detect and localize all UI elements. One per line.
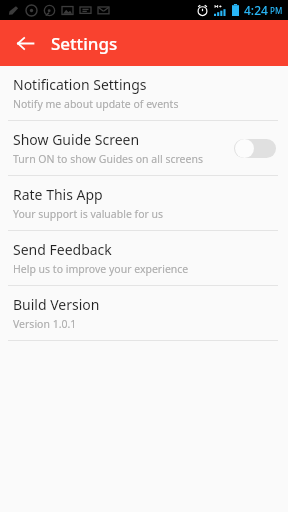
- button[interactable]: Rate This App: [0, 176, 288, 230]
- button[interactable]: Send Feedback: [0, 231, 288, 285]
- staticText: Settings: [51, 32, 118, 55]
- button[interactable]: Build Version: [0, 286, 288, 340]
- staticText: Notification Settings: [13, 75, 147, 94]
- staticText: Version 1.0.1: [13, 317, 77, 331]
- staticText: Show Guide Screen: [13, 130, 140, 149]
- staticText: Build Version: [13, 295, 100, 314]
- button[interactable]: Notification Settings: [0, 66, 288, 120]
- staticText: Rate This App: [13, 185, 103, 204]
- button[interactable]: Back: [9, 27, 41, 59]
- button[interactable]: Show Guide Screen: [0, 121, 288, 175]
- staticText: Your support is valuable for us: [13, 207, 164, 221]
- staticText: PM: [270, 5, 283, 16]
- staticText: Turn ON to show Guides on all screens: [13, 152, 203, 166]
- staticText: Notify me about update of events: [13, 97, 179, 111]
- staticText: Send Feedback: [13, 240, 112, 259]
- staticText: Help us to improve your experience: [13, 262, 189, 276]
- staticText: 4:24: [244, 2, 268, 18]
- button[interactable]: Show Guide Screen toggle: [234, 137, 276, 159]
